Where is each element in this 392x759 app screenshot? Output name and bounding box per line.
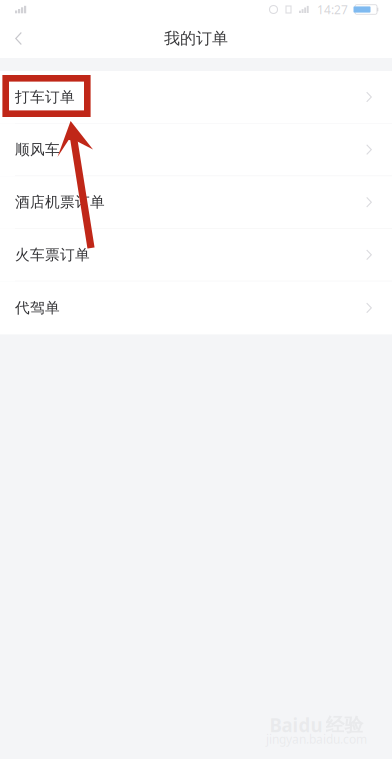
staticText: 代驾单 bbox=[15, 299, 60, 317]
button[interactable]: 火车票订单 bbox=[0, 229, 392, 281]
button[interactable]: 打车订单 bbox=[0, 71, 392, 124]
button[interactable]: 代驾单 bbox=[0, 281, 392, 334]
staticText: 14:27 bbox=[317, 1, 348, 17]
staticText: 顺风车 bbox=[15, 141, 60, 159]
button[interactable]: 顺风车 bbox=[0, 124, 392, 176]
staticText: Baidu bbox=[269, 713, 322, 737]
staticText: 酒店机票订单 bbox=[15, 193, 105, 211]
staticText: 经验 bbox=[325, 713, 363, 736]
staticText: 我的订单 bbox=[164, 29, 228, 48]
staticText: 打车订单 bbox=[15, 88, 75, 106]
staticText: jingyan.baidu.com bbox=[266, 731, 367, 747]
button[interactable]: 返回 bbox=[0, 19, 44, 58]
button[interactable]: 酒店机票订单 bbox=[0, 176, 392, 229]
staticText: 火车票订单 bbox=[15, 246, 90, 264]
